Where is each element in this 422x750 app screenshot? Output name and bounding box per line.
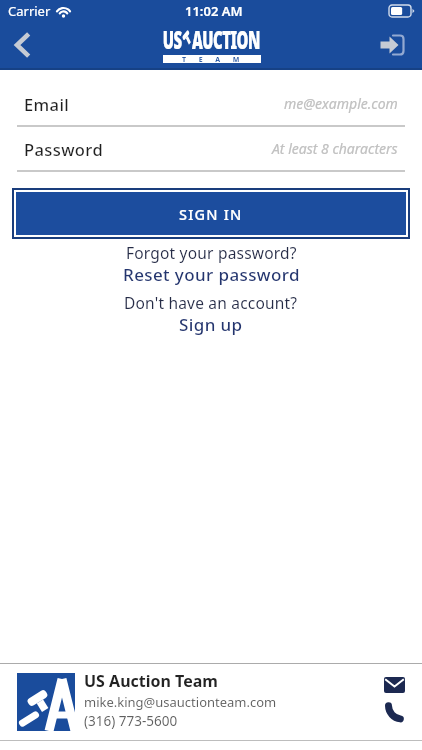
- staticText: me@example.com: [284, 94, 398, 113]
- staticText: Email: [24, 93, 70, 115]
- button[interactable]: [17, 673, 75, 731]
- staticText: mike.king@usauctionteam.com: [84, 693, 277, 711]
- staticText: At least 8 characters: [272, 139, 398, 158]
- button[interactable]: [385, 702, 405, 722]
- staticText: T E A M: [182, 55, 243, 63]
- staticText: AUCTION: [192, 23, 260, 56]
- staticText: (316) 773-5600: [84, 712, 178, 730]
- button[interactable]: [384, 677, 405, 693]
- button[interactable]: Sign up: [179, 313, 243, 336]
- staticText: Password: [24, 138, 104, 160]
- button[interactable]: Email: [0, 82, 422, 127]
- button[interactable]: Reset your password: [123, 263, 300, 286]
- staticText: Forgot your password?: [126, 242, 297, 263]
- button[interactable]: SIGN IN: [16, 192, 406, 235]
- staticText: US: [163, 23, 182, 56]
- button[interactable]: [0, 23, 44, 67]
- staticText: Reset your password: [123, 263, 300, 286]
- staticText: Sign up: [179, 313, 243, 336]
- staticText: Don't have an account?: [124, 292, 298, 313]
- staticText: 11:02 AM: [185, 2, 243, 20]
- button[interactable]: [372, 24, 414, 66]
- staticText: SIGN IN: [179, 204, 243, 224]
- staticText: Carrier: [8, 2, 51, 20]
- button[interactable]: Password: [0, 127, 422, 172]
- staticText: US Auction Team: [84, 670, 218, 692]
